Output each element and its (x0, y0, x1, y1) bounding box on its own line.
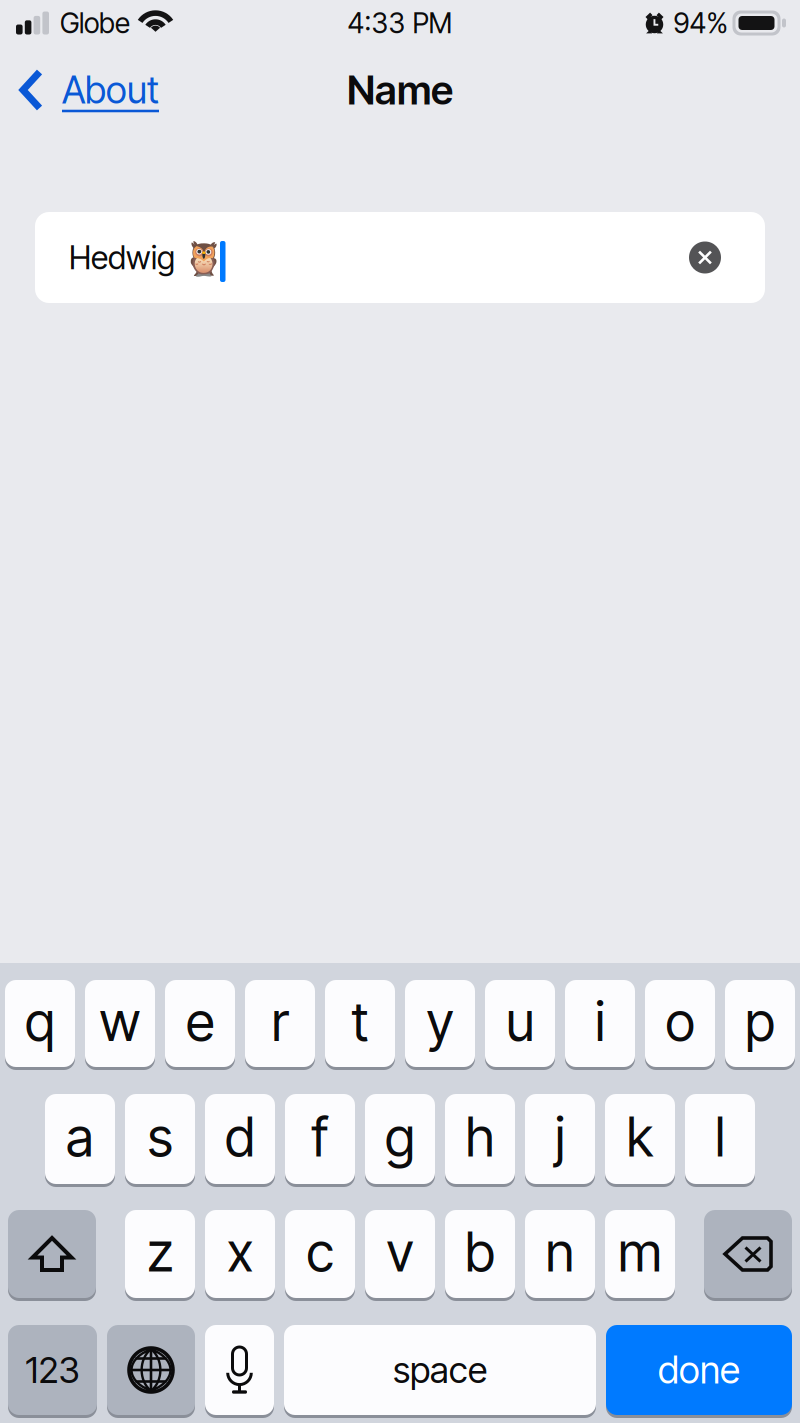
button[interactable]: x (205, 1210, 275, 1298)
button[interactable]: b (445, 1210, 515, 1298)
button[interactable]: p (725, 980, 795, 1067)
button[interactable]: i (565, 980, 635, 1067)
button[interactable]: space (284, 1325, 596, 1415)
staticText: g (385, 1105, 415, 1169)
button[interactable]: 123 (8, 1325, 97, 1415)
staticText: n (545, 1220, 574, 1284)
button[interactable]: y (405, 980, 475, 1067)
staticText: y (426, 989, 453, 1054)
button[interactable]: v (365, 1210, 435, 1298)
button[interactable]: a (45, 1094, 115, 1184)
staticText: m (618, 1220, 662, 1284)
button[interactable]: d (205, 1094, 275, 1184)
staticText: i (595, 989, 605, 1054)
button[interactable]: c (285, 1210, 355, 1298)
button[interactable]: n (525, 1210, 595, 1298)
staticText: j (555, 1105, 565, 1169)
button[interactable]: m (605, 1210, 675, 1298)
button[interactable]: Dictate (205, 1325, 274, 1415)
button[interactable]: z (125, 1210, 195, 1298)
staticText: done (658, 1347, 740, 1393)
button[interactable]: u (485, 980, 555, 1067)
staticText: a (66, 1105, 94, 1169)
staticText: l (715, 1105, 725, 1169)
staticText: v (386, 1220, 413, 1284)
button[interactable]: f (285, 1094, 355, 1184)
button[interactable]: s (125, 1094, 195, 1184)
button[interactable]: o (645, 980, 715, 1067)
button[interactable]: About (0, 46, 175, 134)
staticText: u (506, 989, 534, 1054)
staticText: d (225, 1105, 255, 1169)
staticText: s (147, 1105, 172, 1169)
button[interactable]: done (606, 1325, 792, 1415)
staticText: 123 (25, 1348, 79, 1392)
staticText: r (271, 989, 288, 1054)
staticText: Hedwig (69, 238, 175, 277)
button[interactable]: g (365, 1094, 435, 1184)
button[interactable]: e (165, 980, 235, 1067)
button[interactable]: h (445, 1094, 515, 1184)
button[interactable]: Clear text (682, 234, 728, 280)
staticText: 94% (673, 6, 727, 40)
button[interactable]: w (85, 980, 155, 1067)
button[interactable]: l (685, 1094, 755, 1184)
staticText: h (465, 1105, 494, 1169)
staticText: space (393, 1348, 487, 1392)
button[interactable]: t (325, 980, 395, 1067)
staticText: z (147, 1220, 173, 1284)
button[interactable]: r (245, 980, 315, 1067)
staticText: Globe (60, 6, 130, 40)
button[interactable]: Delete (704, 1210, 792, 1298)
staticText: o (665, 989, 694, 1054)
staticText: x (227, 1220, 253, 1284)
staticText: t (351, 989, 368, 1054)
staticText: q (25, 989, 55, 1054)
staticText: Name (347, 66, 453, 114)
staticText: k (626, 1105, 653, 1169)
staticText: 🦉 (175, 237, 225, 278)
staticText: About (62, 67, 159, 113)
button[interactable]: k (605, 1094, 675, 1184)
staticText: 4:33 PM (347, 6, 452, 40)
button[interactable]: Next keyboard (107, 1325, 195, 1415)
staticText: c (306, 1220, 333, 1284)
staticText: w (99, 989, 140, 1054)
staticText: b (465, 1220, 495, 1284)
button[interactable]: q (5, 980, 75, 1067)
button[interactable]: j (525, 1094, 595, 1184)
staticText: p (745, 989, 775, 1054)
staticText: e (186, 989, 214, 1054)
staticText: f (311, 1105, 328, 1169)
button[interactable]: Shift (8, 1210, 96, 1298)
